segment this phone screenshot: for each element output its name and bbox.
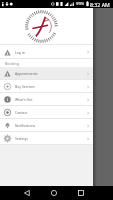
button[interactable]: Log in: [0, 45, 93, 59]
staticText: 99%: [76, 1, 85, 7]
staticText: Notifications: [15, 123, 36, 128]
staticText: Booking: [5, 61, 19, 66]
staticText: Settings: [15, 136, 28, 141]
button[interactable]: Home: [47, 186, 60, 199]
button[interactable]: Buy Services: [0, 80, 93, 93]
button[interactable]: Notifications: [0, 119, 93, 132]
button[interactable]: Appointments: [0, 67, 93, 80]
staticText: Buy Services: [15, 84, 35, 89]
button[interactable]: What's Hot: [0, 93, 93, 106]
button[interactable]: Recent apps: [74, 186, 87, 199]
staticText: Contact: [15, 110, 28, 115]
button[interactable]: Back: [20, 186, 33, 199]
staticText: What's Hot: [15, 97, 33, 102]
staticText: Appointments: [15, 71, 38, 76]
staticText: Log in: [15, 50, 25, 55]
button[interactable]: Settings: [0, 132, 93, 145]
button[interactable]: Contact: [0, 106, 93, 119]
staticText: 8:32 AM: [90, 1, 110, 8]
